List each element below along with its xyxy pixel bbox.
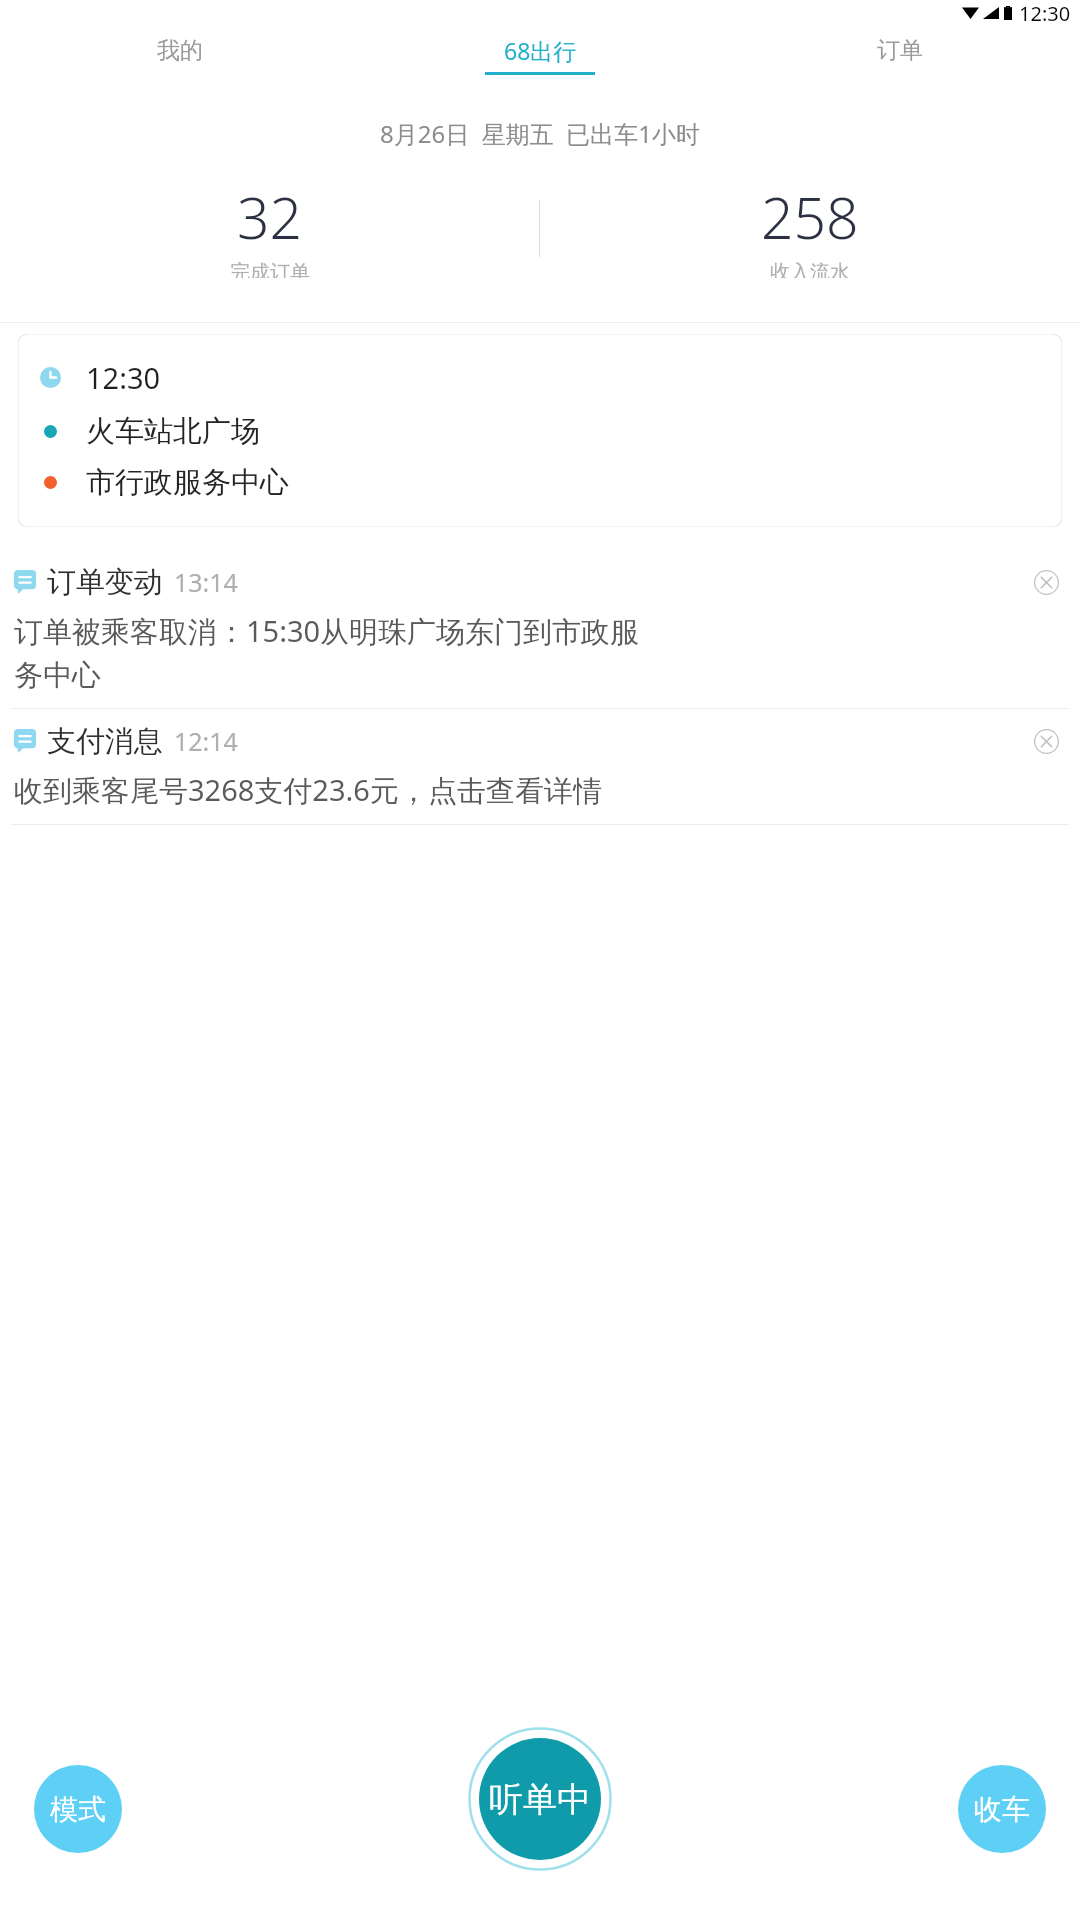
staticText: 我的 <box>157 36 203 65</box>
staticText: 68出行 <box>504 35 577 66</box>
button[interactable]: Dismiss notification <box>1026 721 1066 761</box>
staticText: 12:30 <box>1019 0 1071 25</box>
staticText: 订单被乘客取消：15:30从明珠广场东门到市政服 务中心 <box>14 611 1066 694</box>
button[interactable]: 支付消息 <box>0 709 1080 824</box>
staticText: 收入流水 <box>770 260 850 278</box>
staticText: 完成订单 <box>230 260 310 278</box>
staticText: 火车站北广场 <box>86 413 260 450</box>
staticText: 订单 <box>877 36 923 65</box>
button[interactable]: 订单变动 <box>0 550 1080 708</box>
button[interactable]: 订单 <box>720 25 1080 75</box>
button[interactable]: 12:30 <box>18 334 1062 527</box>
button[interactable]: 模式 <box>34 1765 122 1853</box>
button[interactable]: 听单中 <box>468 1727 612 1871</box>
button[interactable]: Dismiss notification <box>1026 562 1066 602</box>
button[interactable]: 我的 <box>0 25 360 75</box>
staticText: 模式 <box>50 1792 106 1827</box>
staticText: 13:14 <box>174 565 238 599</box>
staticText: 支付消息 <box>47 723 163 760</box>
button[interactable]: 68出行 <box>360 25 720 75</box>
staticText: 收到乘客尾号3268支付23.6元，点击查看详情 <box>14 770 1066 810</box>
staticText: 听单中 <box>489 1778 591 1821</box>
staticText: 12:30 <box>86 358 161 397</box>
staticText: 8月26日 星期五 已出车1小时 <box>380 117 700 150</box>
staticText: 市行政服务中心 <box>86 464 289 501</box>
staticText: 12:14 <box>174 724 238 758</box>
staticText: 订单变动 <box>47 564 163 601</box>
button[interactable]: 收车 <box>958 1765 1046 1853</box>
staticText: 258 <box>761 178 859 256</box>
staticText: 32 <box>237 178 303 256</box>
staticText: 收车 <box>974 1792 1030 1827</box>
